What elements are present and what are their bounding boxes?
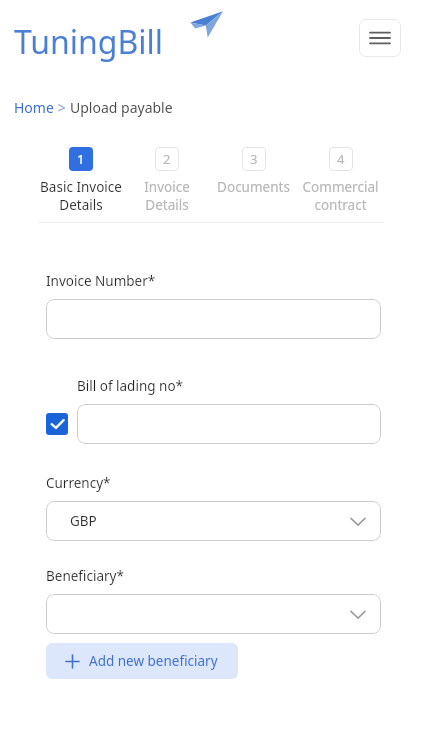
staticText: Bill of lading no* [77, 377, 184, 395]
staticText: Basic Invoice Details [38, 178, 124, 214]
staticText: Invoice Details [124, 178, 210, 214]
staticText: Commercial contract [297, 178, 384, 214]
button[interactable]: 2 [124, 147, 210, 214]
staticText: Home [14, 98, 54, 117]
staticText: Beneficiary* [46, 567, 124, 585]
staticText: Currency* [46, 474, 111, 492]
staticText: > [54, 98, 70, 117]
button[interactable]: 3 [210, 147, 297, 196]
button[interactable]: Home [14, 98, 54, 117]
staticText: 2 [163, 150, 171, 168]
button[interactable] [77, 404, 381, 444]
button[interactable]: GBP [46, 501, 381, 541]
staticText: 3 [250, 150, 258, 168]
button[interactable] [46, 594, 381, 634]
staticText: Documents [217, 178, 290, 196]
button[interactable]: 4 [297, 147, 384, 214]
button[interactable]: 1 [38, 147, 124, 214]
button[interactable]: Add new beneficiary [46, 643, 238, 679]
staticText: Add new beneficiary [89, 652, 218, 670]
button[interactable] [46, 299, 381, 339]
staticText: TuningBill [14, 20, 164, 64]
staticText: Invoice Number* [46, 272, 156, 290]
staticText: 4 [337, 150, 345, 168]
staticText: 1 [77, 150, 85, 168]
staticText: GBP [70, 512, 97, 530]
button[interactable]: Menu [359, 19, 401, 57]
staticText: Upload payable [70, 98, 173, 117]
button[interactable]: Bill of lading checkbox [46, 413, 68, 435]
